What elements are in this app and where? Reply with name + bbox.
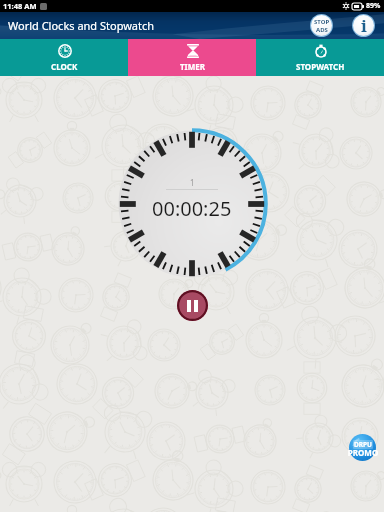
button[interactable]: Stop Ads <box>311 15 332 36</box>
button[interactable]: DRPU Promo <box>349 434 376 461</box>
button[interactable]: TIMER <box>128 39 256 76</box>
staticText: 11:48 AM <box>3 1 37 11</box>
staticText: i <box>361 15 367 35</box>
staticText: World Clocks and Stopwatch <box>8 18 155 33</box>
staticText: 89% <box>366 1 381 11</box>
staticText: 00:00:25 <box>152 195 232 222</box>
staticText: CLOCK <box>51 61 78 72</box>
staticText: 1 <box>190 177 195 188</box>
staticText: STOP <box>314 18 330 26</box>
button[interactable]: Info <box>353 15 374 36</box>
staticText: DRPU <box>354 440 372 449</box>
button[interactable]: Pause <box>177 290 208 321</box>
staticText: TIMER <box>180 61 205 72</box>
button[interactable]: STOPWATCH <box>256 39 384 76</box>
staticText: ADS <box>316 26 328 34</box>
staticText: PROMO <box>346 447 380 458</box>
button[interactable]: CLOCK <box>0 39 128 76</box>
staticText: STOPWATCH <box>296 61 345 72</box>
